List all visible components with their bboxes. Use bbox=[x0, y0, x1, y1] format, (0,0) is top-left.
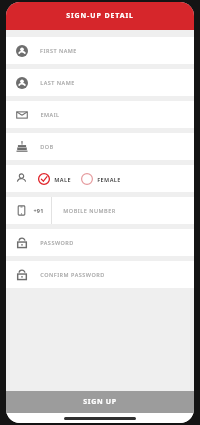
button[interactable]: EMAIL bbox=[6, 101, 194, 128]
button[interactable]: SIGN UP bbox=[6, 391, 194, 413]
button[interactable]: +91 bbox=[6, 197, 194, 224]
staticText: PASSWORD bbox=[40, 239, 74, 246]
button[interactable]: FEMALE bbox=[80, 171, 122, 187]
button[interactable]: MALE bbox=[37, 171, 72, 187]
staticText: FIRST NAME bbox=[40, 47, 77, 54]
staticText: DOB bbox=[40, 143, 54, 150]
staticText: SIGN-UP DETAIL bbox=[66, 11, 134, 21]
button[interactable]: FIRST NAME bbox=[6, 37, 194, 64]
button[interactable]: LAST NAME bbox=[6, 69, 194, 96]
button[interactable]: PASSWORD bbox=[6, 229, 194, 256]
staticText: FEMALE bbox=[97, 176, 121, 183]
staticText: LAST NAME bbox=[40, 79, 75, 86]
button[interactable]: CONFIRM PASSWORD bbox=[6, 261, 194, 288]
staticText: +91 bbox=[33, 207, 44, 214]
staticText: MOBILE NUMBER bbox=[63, 207, 116, 214]
staticText: SIGN UP bbox=[83, 397, 117, 407]
button[interactable]: DOB bbox=[6, 133, 194, 160]
staticText: CONFIRM PASSWORD bbox=[40, 271, 105, 278]
staticText: MALE bbox=[54, 176, 71, 183]
staticText: EMAIL bbox=[40, 111, 60, 118]
